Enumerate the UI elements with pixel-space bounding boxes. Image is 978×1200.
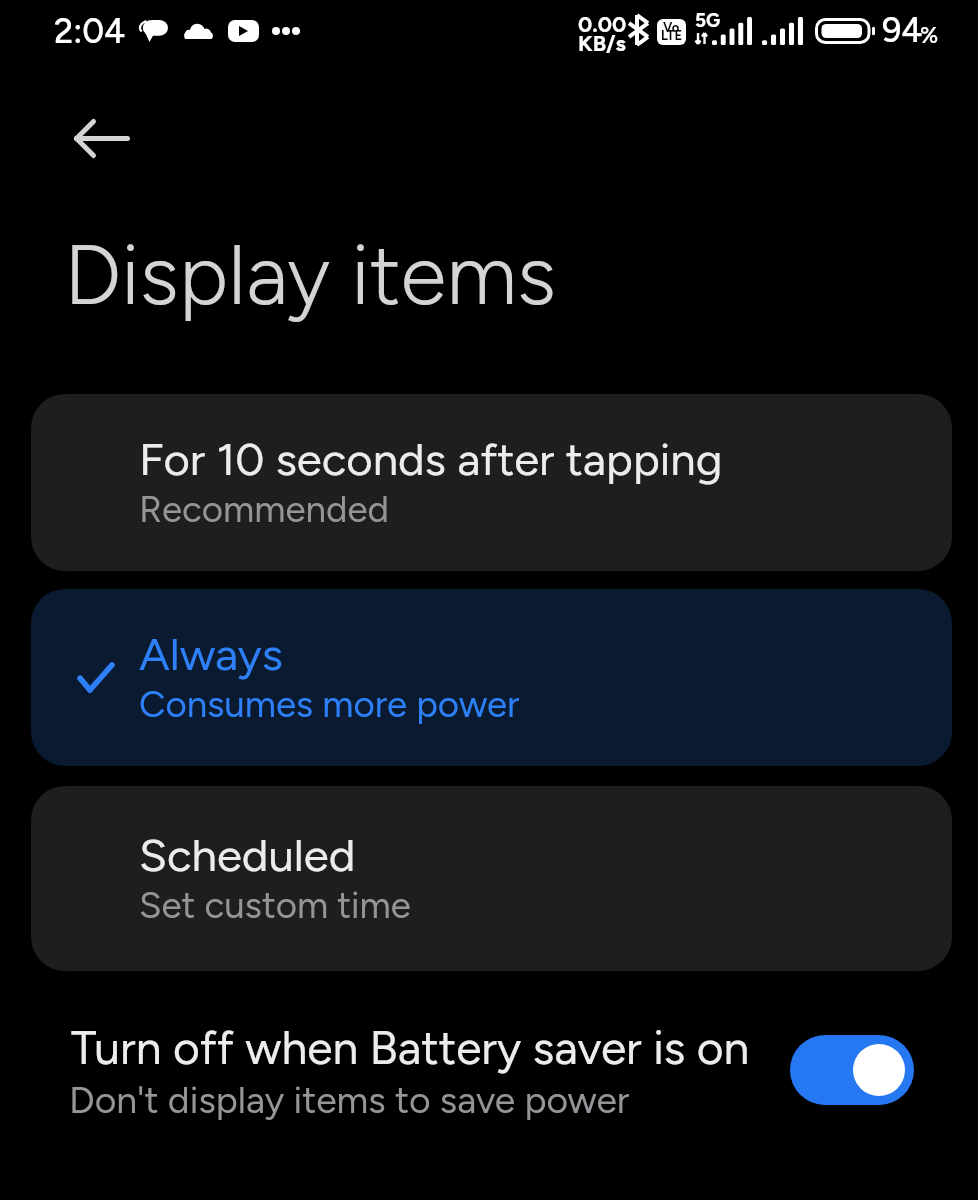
staticText: For 10 seconds after tapping: [139, 432, 723, 487]
button[interactable]: Turn off when Battery saver is on: [0, 1005, 978, 1135]
staticText: 5G: [695, 9, 721, 32]
staticText: Don't display items to save power: [69, 1078, 630, 1123]
staticText: KB/s: [578, 30, 626, 56]
staticText: Always: [139, 627, 283, 682]
staticText: Turn off when Battery saver is on: [71, 1020, 750, 1075]
button[interactable]: Scheduled: [31, 786, 952, 971]
staticText: Consumes more power: [139, 682, 520, 726]
staticText: %: [920, 21, 939, 49]
button[interactable]: Back: [50, 89, 150, 189]
button[interactable]: Always: [31, 589, 952, 766]
staticText: Vo: [663, 20, 680, 36]
button[interactable]: For 10 seconds after tapping: [31, 394, 952, 571]
staticText: Display items: [64, 224, 557, 325]
button[interactable]: Turn off when Battery saver is on: [790, 1035, 914, 1105]
staticText: 2:04: [54, 11, 126, 52]
staticText: Scheduled: [139, 828, 356, 883]
staticText: Recommended: [139, 487, 390, 531]
staticText: 0.00: [578, 11, 627, 37]
staticText: Set custom time: [139, 883, 411, 927]
staticText: 94: [882, 10, 923, 51]
staticText: LTE: [661, 28, 683, 44]
